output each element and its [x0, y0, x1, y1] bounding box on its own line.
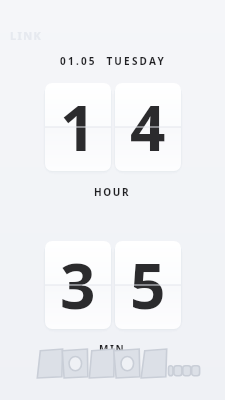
staticText: LINK: [10, 28, 43, 43]
staticText: 5: [130, 243, 166, 327]
button[interactable]: Digit 3: [45, 241, 111, 329]
staticText: 4: [130, 85, 166, 169]
staticText: MIN: [99, 342, 126, 356]
button[interactable]: 01.05 TUESDAY: [60, 54, 166, 68]
staticText: 3: [60, 243, 96, 327]
staticText: HOUR: [94, 185, 131, 199]
button[interactable]: Digit 1: [45, 83, 111, 171]
button[interactable]: Digit 5: [115, 241, 181, 329]
staticText: 1: [60, 85, 96, 169]
button[interactable]: Digit 4: [115, 83, 181, 171]
